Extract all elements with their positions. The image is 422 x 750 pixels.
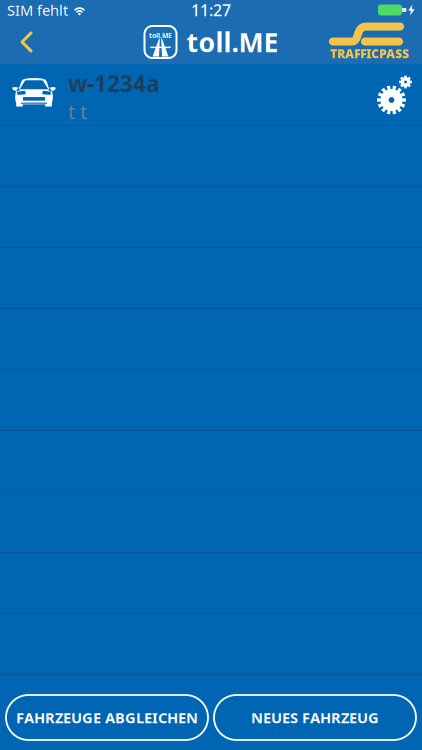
button[interactable] xyxy=(0,248,422,309)
button[interactable] xyxy=(0,309,422,370)
staticText: 11:27 xyxy=(191,0,231,21)
button[interactable]: NEUES FAHRZEUG xyxy=(214,695,416,740)
staticText: w-1234a xyxy=(68,68,160,98)
staticText: t t xyxy=(68,98,87,125)
button[interactable] xyxy=(0,553,422,614)
staticText: FAHRZEUGE ABGLEICHEN xyxy=(16,708,198,727)
button[interactable]: Back xyxy=(0,20,45,64)
staticText: TRAFFICPASS xyxy=(330,45,409,61)
staticText: SIM fehlt xyxy=(7,0,68,20)
staticText: NEUES FAHRZEUG xyxy=(251,708,379,727)
staticText: toll.ME xyxy=(149,31,172,40)
button[interactable] xyxy=(0,492,422,553)
button[interactable] xyxy=(0,187,422,248)
button[interactable] xyxy=(0,431,422,492)
staticText: toll.ME xyxy=(186,24,278,60)
button[interactable]: TrafficPass xyxy=(333,24,422,60)
button[interactable] xyxy=(0,614,422,675)
button[interactable] xyxy=(0,126,422,187)
button[interactable]: FAHRZEUGE ABGLEICHEN xyxy=(6,695,208,740)
button[interactable] xyxy=(0,370,422,431)
button[interactable]: w-1234a xyxy=(0,64,422,126)
